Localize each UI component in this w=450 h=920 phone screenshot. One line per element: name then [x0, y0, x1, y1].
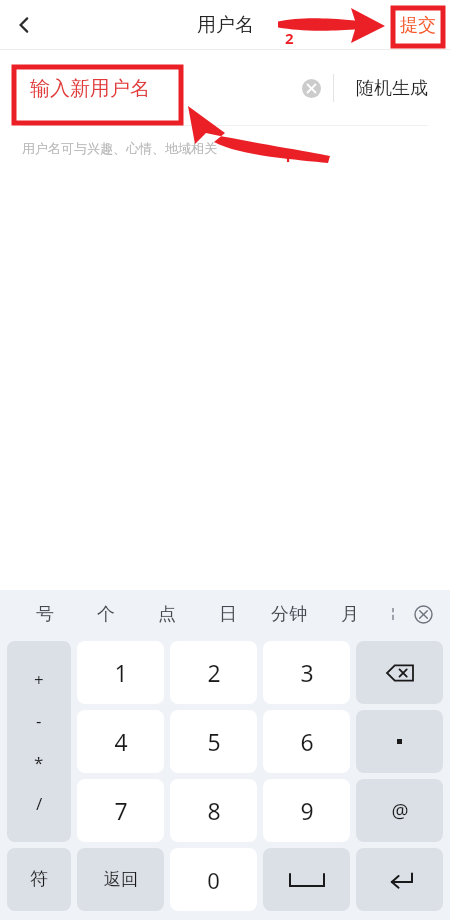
button[interactable]: Clear: [289, 66, 333, 110]
button[interactable]: 0: [170, 848, 257, 911]
staticText: 7: [114, 795, 128, 826]
staticText: 9: [300, 795, 314, 826]
button[interactable]: 个: [75, 590, 136, 638]
button[interactable]: 日: [197, 590, 258, 638]
button[interactable]: Backspace: [356, 641, 443, 704]
staticText: 个: [97, 603, 115, 626]
staticText: 分钟: [271, 603, 307, 626]
button[interactable]: 分钟: [258, 590, 319, 638]
button[interactable]: Back: [0, 1, 48, 49]
button[interactable]: 5: [170, 710, 257, 773]
button[interactable]: 月: [319, 590, 380, 638]
staticText: 用户名可与兴趣、心情、地域相关: [22, 140, 217, 156]
staticText: 3: [300, 657, 314, 688]
staticText: 日: [219, 603, 237, 626]
button[interactable]: 符: [7, 848, 71, 911]
staticText: 1: [114, 657, 128, 688]
button[interactable]: 7: [77, 779, 164, 842]
button[interactable]: Close keyboard: [406, 590, 440, 638]
button[interactable]: 1: [77, 641, 164, 704]
staticText: 0: [207, 865, 220, 895]
staticText: 1: [283, 146, 292, 166]
staticText: 返回: [104, 869, 138, 890]
staticText: 提交: [400, 14, 436, 37]
staticText: 号: [36, 603, 54, 626]
staticText: 8: [207, 795, 221, 826]
button[interactable]: 6: [263, 710, 350, 773]
button[interactable]: 输入新用户名: [30, 50, 289, 126]
button[interactable]: Space: [263, 848, 350, 911]
button[interactable]: 提交: [400, 14, 436, 37]
staticText: 月: [341, 603, 359, 626]
staticText: 4: [114, 726, 128, 757]
staticText: *: [34, 751, 44, 774]
button[interactable]: More: [380, 590, 406, 638]
button[interactable]: Enter: [356, 848, 443, 911]
staticText: 2: [207, 657, 221, 688]
button[interactable]: 点: [136, 590, 197, 638]
button[interactable]: 9: [263, 779, 350, 842]
staticText: /: [36, 792, 43, 815]
staticText: 随机生成: [356, 77, 428, 100]
button[interactable]: 8: [170, 779, 257, 842]
button[interactable]: 3: [263, 641, 350, 704]
staticText: -: [36, 709, 42, 732]
button[interactable]: @: [356, 779, 443, 842]
staticText: +: [34, 668, 44, 691]
staticText: 6: [300, 726, 314, 757]
staticText: 2: [285, 28, 294, 48]
staticText: 用户名: [197, 13, 254, 37]
button[interactable]: 返回: [77, 848, 164, 911]
button[interactable]: 4: [77, 710, 164, 773]
button[interactable]: Period: [356, 710, 443, 773]
staticText: 点: [158, 603, 176, 626]
staticText: 符: [30, 868, 48, 891]
button[interactable]: 号: [14, 590, 75, 638]
button[interactable]: 2: [170, 641, 257, 704]
staticText: 输入新用户名: [30, 76, 150, 101]
button[interactable]: +: [7, 641, 71, 842]
staticText: 5: [207, 726, 221, 757]
staticText: @: [391, 798, 409, 824]
button[interactable]: 随机生成: [334, 50, 450, 126]
